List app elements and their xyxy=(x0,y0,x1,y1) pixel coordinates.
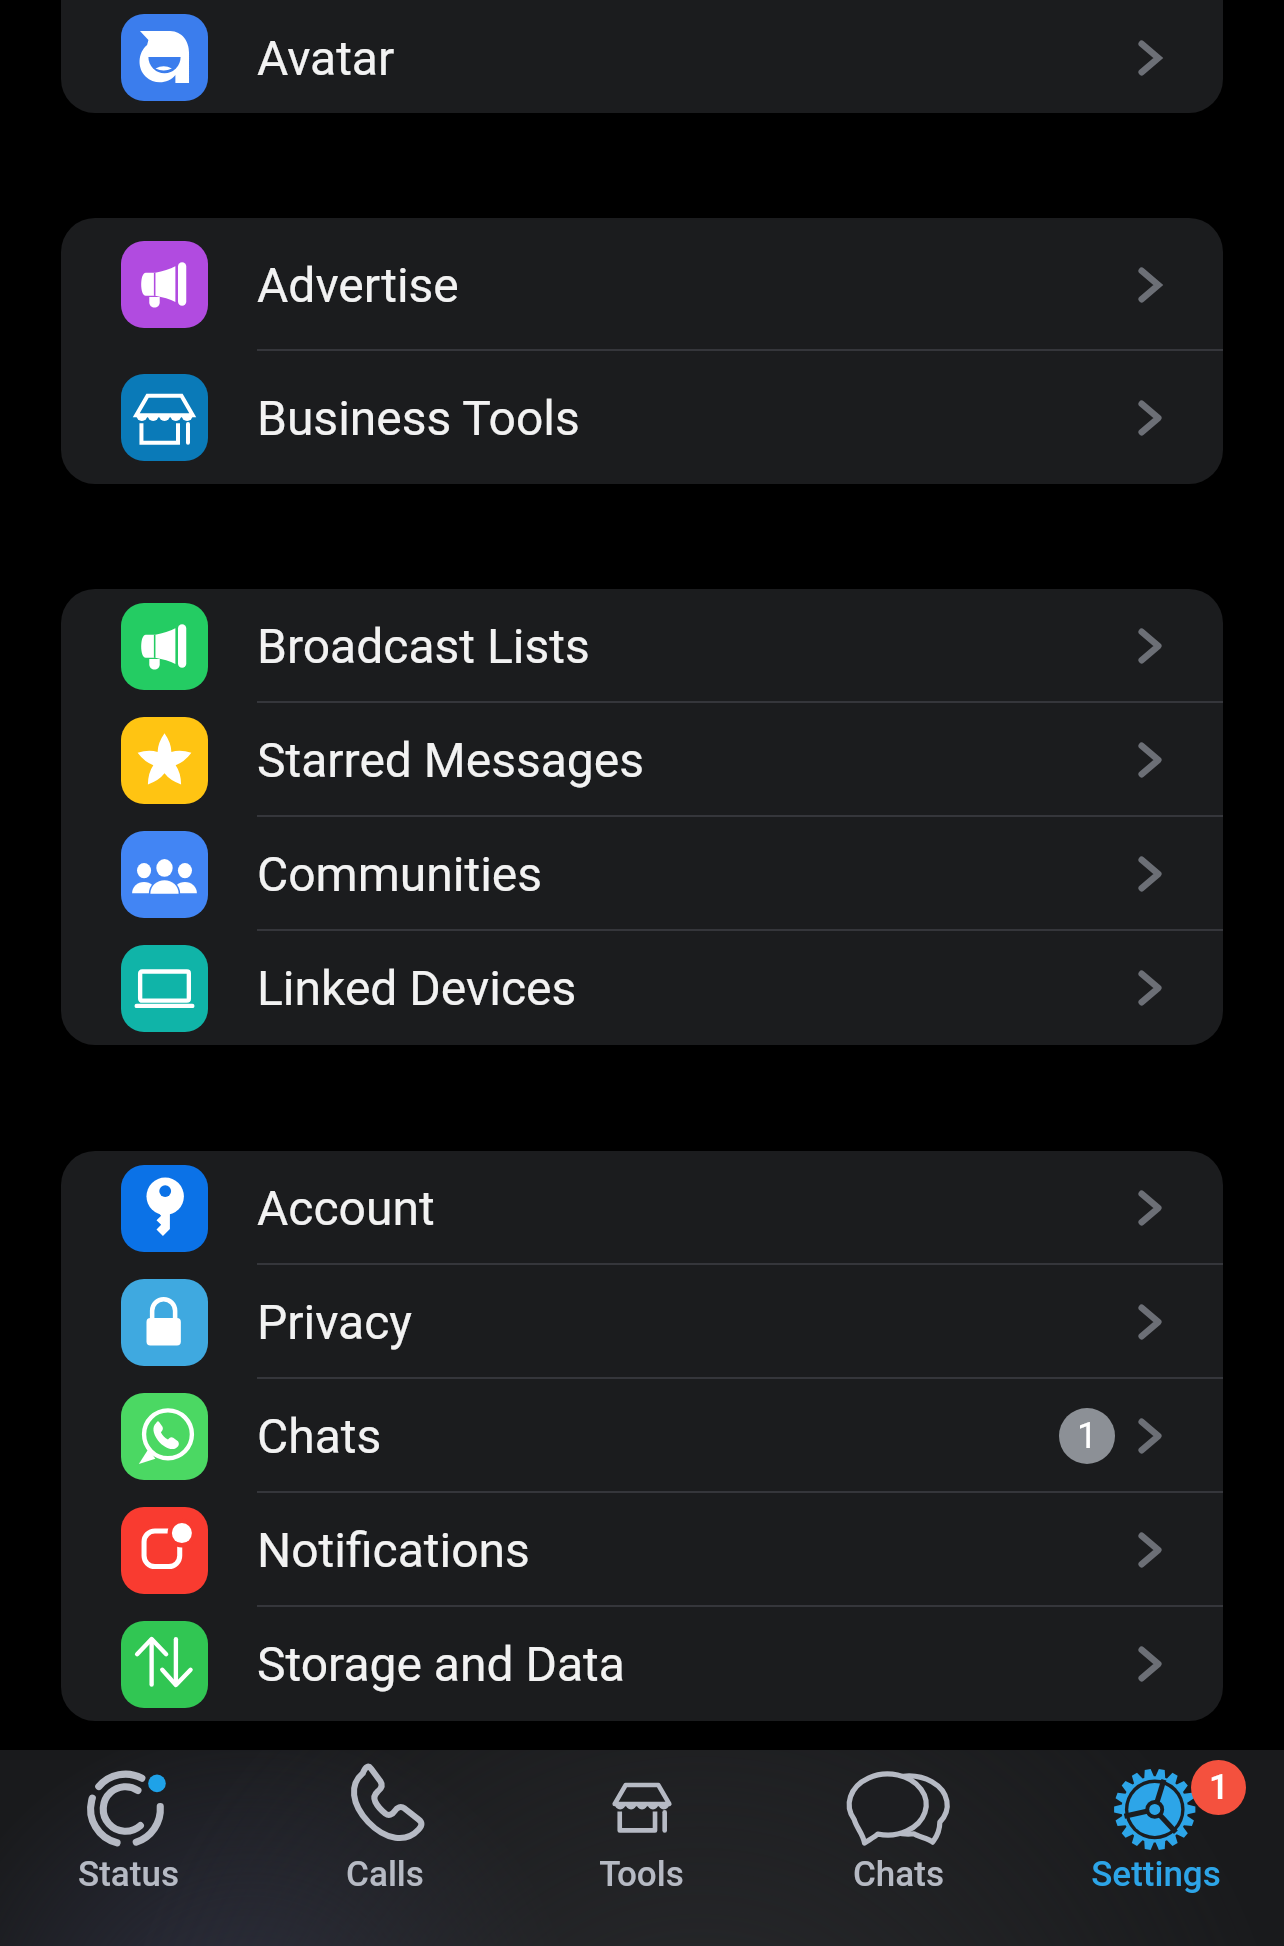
staticText: Tools xyxy=(599,1854,684,1895)
staticText: Starred Messages xyxy=(257,732,1139,788)
staticText: Account xyxy=(257,1180,1139,1236)
button[interactable]: Calls xyxy=(256,1750,513,1946)
button[interactable]: Account xyxy=(61,1151,1223,1265)
button[interactable]: Chats xyxy=(61,1379,1223,1493)
staticText: Advertise xyxy=(257,257,1139,313)
button[interactable]: Linked Devices xyxy=(61,931,1223,1045)
staticText: Privacy xyxy=(257,1294,1139,1350)
staticText: Chats xyxy=(257,1408,1059,1464)
button[interactable]: Notifications xyxy=(61,1493,1223,1607)
button[interactable]: Communities xyxy=(61,817,1223,931)
button[interactable]: Privacy xyxy=(61,1265,1223,1379)
staticText: Business Tools xyxy=(257,390,1139,446)
staticText: Status xyxy=(78,1854,179,1895)
staticText: Chats xyxy=(853,1854,944,1895)
button[interactable]: Tools xyxy=(513,1750,770,1946)
button[interactable]: Status xyxy=(0,1750,256,1946)
button[interactable]: Chats xyxy=(770,1750,1027,1946)
staticText: Settings xyxy=(1091,1854,1221,1895)
staticText: Calls xyxy=(346,1854,424,1895)
button[interactable]: Storage and Data xyxy=(61,1607,1223,1721)
staticText: Linked Devices xyxy=(257,960,1139,1016)
staticText: Broadcast Lists xyxy=(257,618,1139,674)
button[interactable]: Settings xyxy=(1027,1750,1284,1946)
staticText: Notifications xyxy=(257,1522,1139,1578)
button[interactable]: Avatar xyxy=(61,1,1223,113)
staticText: Avatar xyxy=(257,30,1139,86)
staticText: Storage and Data xyxy=(257,1636,1139,1692)
staticText: 1 xyxy=(1077,1415,1098,1457)
staticText: 1 xyxy=(1209,1767,1229,1808)
button[interactable]: Business Tools xyxy=(61,351,1223,484)
button[interactable]: Broadcast Lists xyxy=(61,589,1223,703)
staticText: Communities xyxy=(257,846,1139,902)
button[interactable]: Starred Messages xyxy=(61,703,1223,817)
button[interactable]: Advertise xyxy=(61,218,1223,351)
